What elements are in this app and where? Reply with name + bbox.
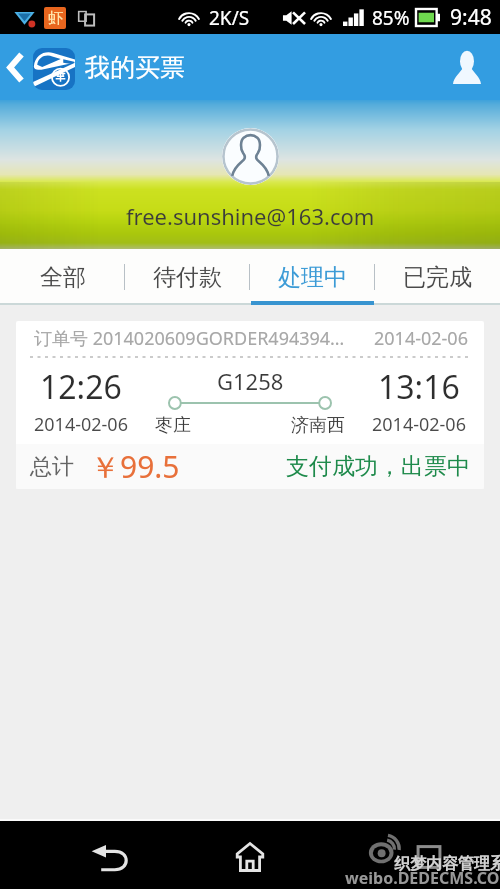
staticText: 总计 (30, 453, 74, 481)
staticText: 2K/S (209, 5, 250, 31)
staticText: weibo.DEDECMS.COM (345, 867, 500, 889)
button[interactable]: Back (0, 34, 30, 100)
staticText: 订单号 2014020609GORDER494394… (34, 326, 345, 351)
button[interactable]: Home (166, 821, 333, 889)
staticText: 全部 (40, 263, 86, 292)
button[interactable]: Back (0, 821, 166, 889)
button[interactable]: 已完成 (375, 249, 500, 305)
staticText: 2014-02-06 (34, 412, 128, 437)
staticText: G1258 (217, 366, 284, 396)
button[interactable]: 订单号 2014020609GORDER494394… (16, 321, 484, 489)
button[interactable]: Account (434, 34, 500, 100)
staticText: 我的买票 (85, 52, 185, 83)
button[interactable]: 处理中 (250, 249, 375, 305)
staticText: 待付款 (153, 263, 222, 292)
staticText: 2014-02-06 (374, 326, 468, 351)
staticText: 13:16 (378, 365, 460, 409)
staticText: 85% (372, 5, 410, 31)
button[interactable]: Recent apps (333, 821, 500, 889)
staticText: ￥99.5 (90, 446, 180, 487)
staticText: free.sunshine@163.com (126, 201, 375, 231)
staticText: 虾 (48, 9, 63, 28)
staticText: 已完成 (403, 263, 472, 292)
staticText: 9:48 (450, 3, 492, 32)
staticText: 支付成功，出票中 (286, 452, 470, 481)
staticText: 12:26 (40, 365, 122, 409)
button[interactable]: 待付款 (125, 249, 250, 305)
staticText: 织梦内容管理系统 (394, 854, 500, 874)
staticText: 济南西 (291, 414, 345, 437)
staticText: 2014-02-06 (372, 412, 466, 437)
button[interactable]: 全部 (0, 249, 125, 305)
staticText: 枣庄 (155, 414, 191, 437)
staticText: 处理中 (278, 263, 347, 292)
